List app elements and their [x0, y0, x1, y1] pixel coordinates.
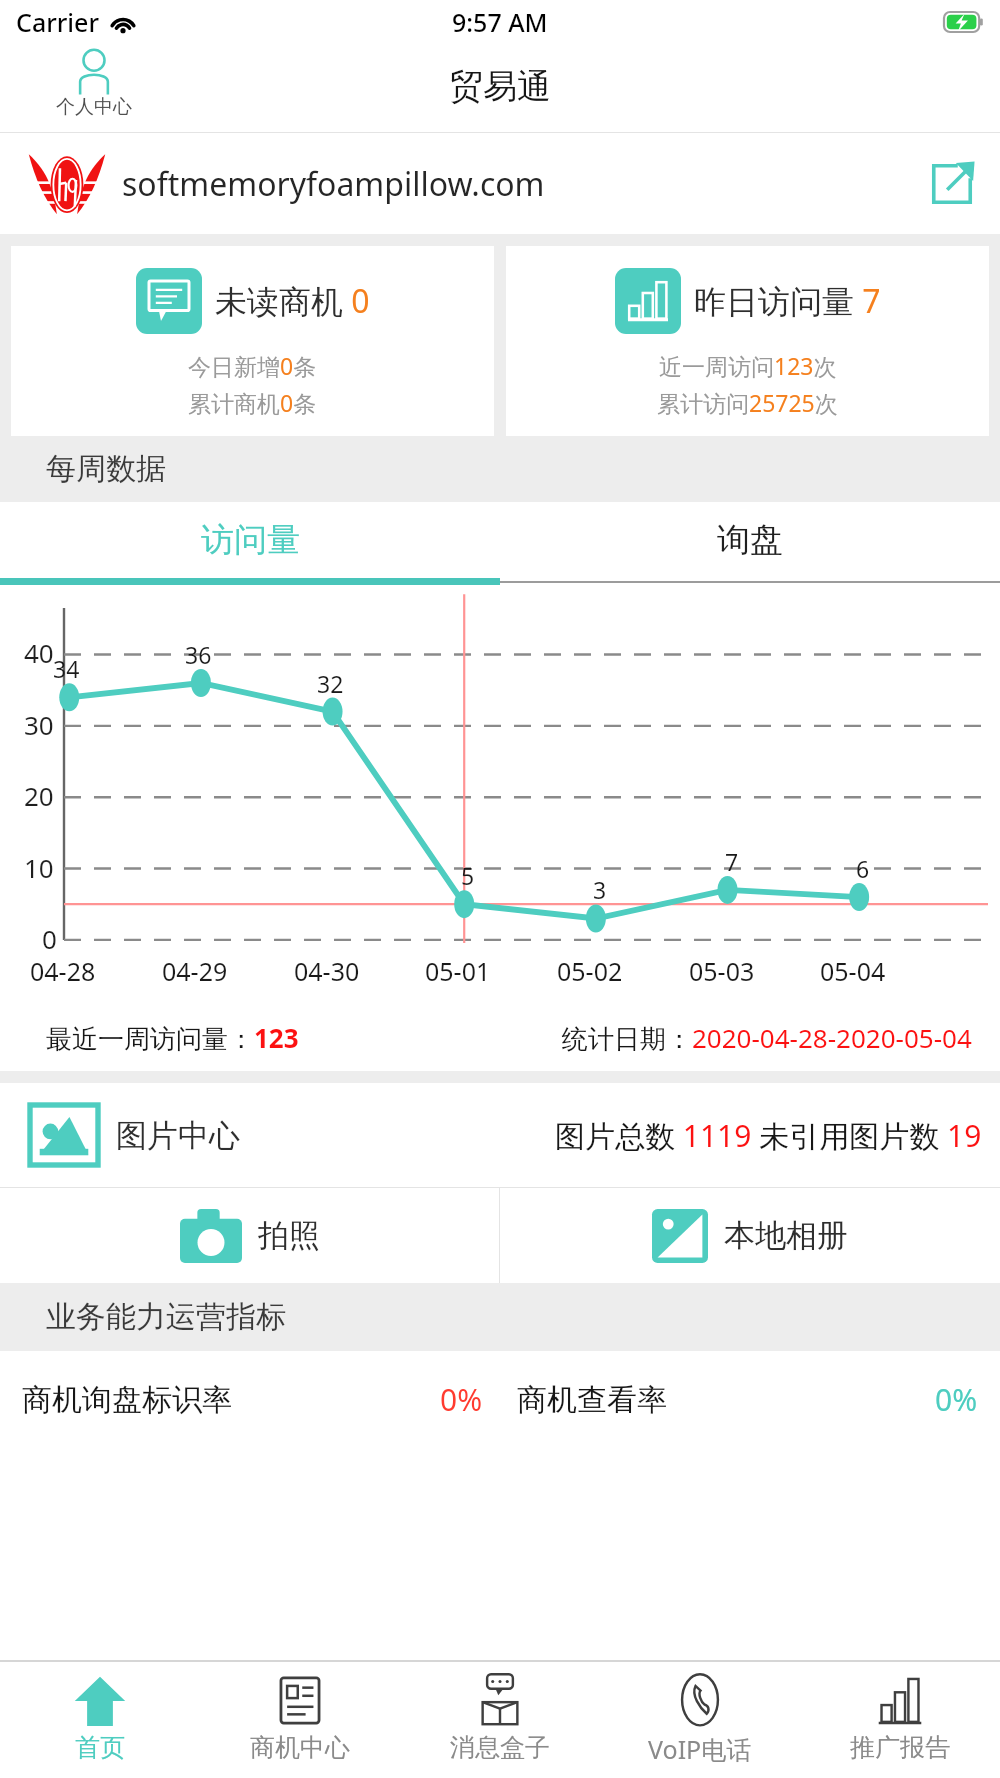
staticText: 首页 [75, 1732, 125, 1763]
staticText: 累计访问25725次 [657, 387, 838, 418]
staticText: 拍照 [258, 1216, 320, 1255]
staticText: 5 [461, 860, 475, 891]
staticText: 10 [24, 850, 54, 885]
staticText: 商机中心 [250, 1732, 350, 1763]
staticText: 36 [185, 639, 212, 670]
staticText: VoIP电话 [648, 1732, 752, 1766]
button[interactable]: 拍照 [0, 1188, 499, 1283]
staticText: 最近一周访问量：123 [46, 1020, 299, 1056]
staticText: 近一周访问123次 [659, 350, 837, 381]
staticText: 04-28 [30, 954, 96, 988]
staticText: 图片总数 1119 未引用图片数 19 [555, 1115, 982, 1156]
staticText: 04-30 [294, 954, 360, 988]
button[interactable]: 商机询盘标识率 [22, 1379, 483, 1420]
staticText: 推广报告 [850, 1732, 950, 1763]
staticText: 贸易通 [449, 65, 551, 108]
button[interactable]: 打开网站 [928, 160, 976, 208]
button[interactable]: 商机查看率 [517, 1379, 978, 1420]
button[interactable]: 昨日访问量 7 [506, 246, 989, 436]
button[interactable]: VoIP电话 [600, 1662, 800, 1778]
staticText: softmemoryfoampillow.com [122, 162, 928, 206]
staticText: 05-02 [557, 954, 623, 988]
staticText: 05-03 [689, 954, 755, 988]
staticText: 9:57 AM [452, 5, 548, 39]
staticText: 本地相册 [724, 1216, 848, 1255]
staticText: 30 [24, 707, 54, 742]
staticText: Carrier [16, 5, 100, 39]
staticText: 未读商机 0 [215, 279, 370, 323]
staticText: 个人中心 [56, 95, 132, 119]
staticText: 6 [856, 853, 870, 884]
staticText: 20 [24, 778, 54, 813]
button[interactable]: 个人中心 [56, 48, 132, 119]
staticText: 统计日期：2020-04-28-2020-05-04 [562, 1020, 972, 1056]
staticText: 0% [935, 1379, 978, 1420]
staticText: 05-04 [820, 954, 886, 988]
staticText: 询盘 [717, 519, 783, 561]
staticText: 34 [53, 653, 80, 684]
button[interactable]: softmemoryfoampillow.com [0, 133, 1000, 234]
button[interactable]: 商机中心 [200, 1662, 400, 1778]
button[interactable]: 消息盒子 [400, 1662, 600, 1778]
staticText: 累计商机0条 [188, 387, 317, 418]
staticText: 05-01 [425, 954, 491, 988]
staticText: 0 [42, 921, 57, 956]
button[interactable]: 询盘 [500, 502, 1000, 578]
staticText: 访问量 [201, 519, 300, 561]
staticText: 图片中心 [116, 1116, 240, 1155]
button[interactable]: 图片中心 [0, 1083, 1000, 1187]
button[interactable]: 本地相册 [500, 1188, 1000, 1283]
button[interactable]: 推广报告 [800, 1662, 1000, 1778]
staticText: 每周数据 [46, 450, 166, 488]
staticText: 业务能力运营指标 [46, 1298, 286, 1336]
staticText: 商机询盘标识率 [22, 1381, 232, 1419]
button[interactable]: 首页 [0, 1662, 200, 1778]
staticText: 商机查看率 [517, 1381, 667, 1419]
staticText: 3 [593, 874, 607, 905]
staticText: 40 [24, 635, 54, 670]
button[interactable]: 未读商机 0 [11, 246, 494, 436]
staticText: 7 [725, 846, 739, 877]
staticText: 0% [440, 1379, 483, 1420]
staticText: 32 [317, 668, 344, 699]
button[interactable]: 访问量 [0, 502, 500, 578]
staticText: 今日新增0条 [188, 350, 317, 381]
staticText: 04-29 [162, 954, 228, 988]
staticText: 消息盒子 [450, 1732, 550, 1763]
staticText: 昨日访问量 7 [694, 279, 881, 323]
